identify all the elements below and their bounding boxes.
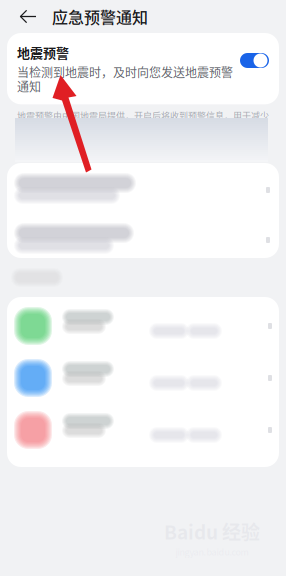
button[interactable]: 地震预警 [7,33,279,104]
staticText: Baidu 经验 [164,517,260,545]
staticText: 应急预警通知 [52,5,148,28]
staticText: 地震预警由中国地震局提供，开启后将收到预警信息，用于减少损失 [17,109,269,135]
button[interactable]: 返回 [11,0,44,32]
staticText: 地震预警 [17,43,69,62]
staticText: 当检测到地震时，及时向您发送地震预警通知 [17,65,233,93]
